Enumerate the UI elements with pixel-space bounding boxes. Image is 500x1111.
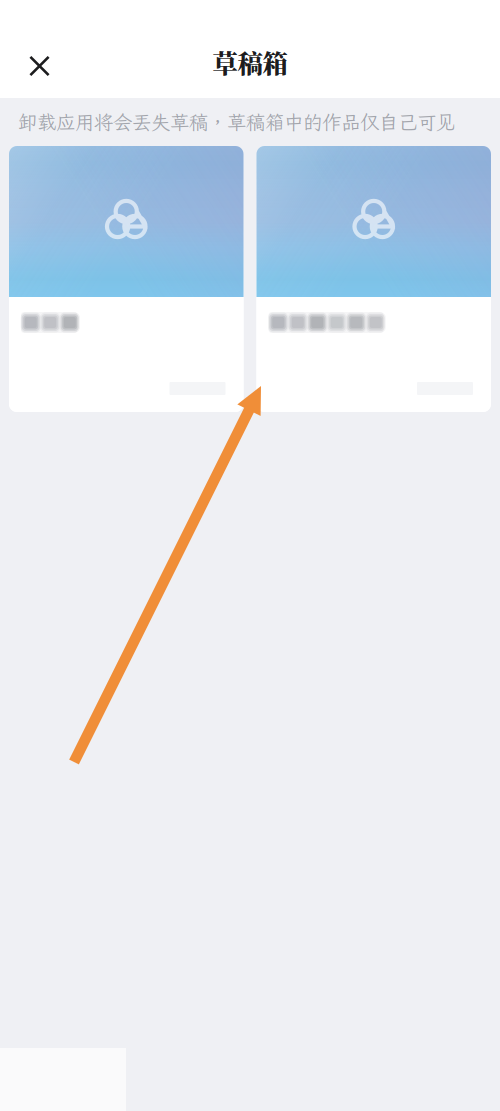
button[interactable]: 关闭 — [0, 44, 64, 87]
button[interactable] — [9, 146, 243, 412]
button[interactable] — [256, 146, 491, 412]
staticText: 卸载应用将会丢失草稿，草稿箱中的作品仅自己可见 — [18, 109, 455, 135]
staticText: 草稿箱 — [212, 44, 287, 80]
